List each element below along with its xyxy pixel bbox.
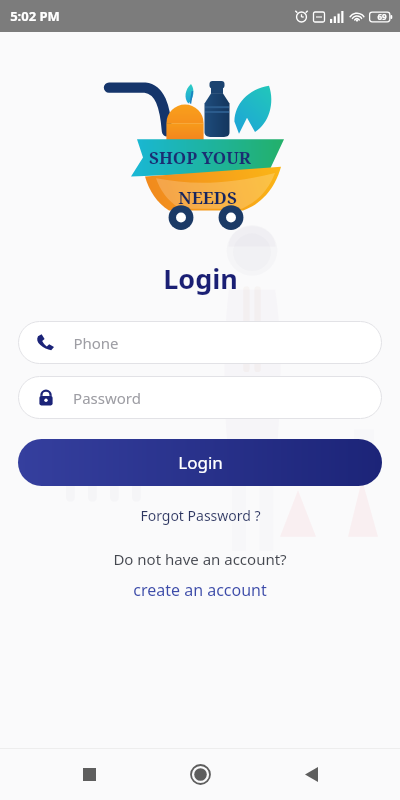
staticText: NEEDS xyxy=(178,186,237,209)
staticText: Password xyxy=(73,388,141,408)
staticText: Do not have an account? xyxy=(113,549,287,569)
staticText: SHOP YOUR xyxy=(149,146,251,169)
button[interactable]: Login xyxy=(18,439,382,486)
staticText: Login xyxy=(178,451,223,474)
staticText: 5:02 PM xyxy=(10,7,60,25)
button[interactable]: Recent apps xyxy=(67,752,111,796)
staticText: 69 xyxy=(377,11,387,22)
button[interactable]: create an account xyxy=(121,577,279,603)
staticText: create an account xyxy=(133,579,267,601)
button[interactable]: Phone xyxy=(18,321,382,364)
button[interactable]: Forgot Password ? xyxy=(128,502,273,529)
button[interactable]: Password xyxy=(18,376,382,419)
staticText: Login xyxy=(163,260,238,297)
staticText: Forgot Password ? xyxy=(140,506,261,525)
button[interactable]: Home xyxy=(178,752,222,796)
staticText: Phone xyxy=(73,333,119,353)
button[interactable]: Back xyxy=(289,752,333,796)
